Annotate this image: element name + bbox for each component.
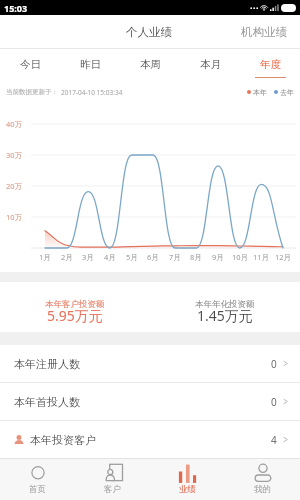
staticText: 5.95万元: [47, 306, 103, 325]
staticText: 本年首投人数: [14, 395, 80, 409]
button[interactable]: Performance: [150, 459, 225, 500]
staticText: 今日: [20, 58, 41, 71]
button[interactable]: 本周: [120, 49, 180, 82]
staticText: 本月: [200, 58, 221, 71]
staticText: 业绩: [179, 484, 196, 495]
staticText: 1.45万元: [197, 306, 253, 325]
staticText: 当前数据更新于：: [6, 88, 58, 96]
button[interactable]: 本月: [180, 49, 240, 82]
staticText: 4: [271, 433, 277, 447]
staticText: 1月: [39, 252, 51, 262]
staticText: 15:03: [4, 2, 28, 14]
staticText: 5月: [126, 252, 138, 262]
button[interactable]: 年度: [240, 49, 300, 82]
button[interactable]: 今日: [0, 49, 60, 82]
staticText: 我的: [254, 484, 271, 495]
staticText: 本年客户投资额: [45, 299, 105, 310]
staticText: 本年年化投资额: [195, 299, 255, 310]
button[interactable]: 本年投资客户: [0, 421, 300, 458]
staticText: 8月: [190, 252, 202, 262]
staticText: 9月: [212, 252, 224, 262]
button[interactable]: 本年首投人数: [0, 383, 300, 420]
staticText: 10月: [232, 252, 249, 262]
button[interactable]: Home: [0, 459, 75, 500]
staticText: 0: [271, 357, 277, 371]
staticText: 本年投资客户: [30, 433, 96, 447]
staticText: 本年注册人数: [14, 357, 80, 371]
button[interactable]: 昨日: [60, 49, 120, 82]
button[interactable]: 机构业绩: [225, 15, 300, 49]
staticText: 客户: [104, 484, 121, 495]
staticText: 30万: [6, 150, 23, 160]
button[interactable]: Customers: [75, 459, 150, 500]
button[interactable]: 本年注册人数: [0, 345, 300, 382]
staticText: 10万: [6, 212, 23, 222]
staticText: 2017-04-10 15:03:34: [61, 88, 123, 97]
staticText: 20万: [6, 181, 23, 191]
staticText: 机构业绩: [241, 25, 287, 39]
staticText: 年度: [260, 58, 281, 71]
button[interactable]: Mine: [225, 459, 300, 500]
staticText: 3月: [82, 252, 94, 262]
staticText: 6月: [147, 252, 159, 262]
button[interactable]: 本年年化投资额: [150, 282, 300, 332]
staticText: 40万: [6, 119, 23, 129]
staticText: 7月: [169, 252, 181, 262]
staticText: 本周: [140, 58, 161, 71]
staticText: 首页: [29, 484, 46, 495]
staticText: 4月: [104, 252, 116, 262]
staticText: 昨日: [80, 58, 101, 71]
staticText: 去年: [280, 88, 294, 97]
staticText: 2月: [61, 252, 73, 262]
button[interactable]: 本年客户投资额: [0, 282, 150, 332]
staticText: 本年: [253, 88, 267, 97]
button[interactable]: 个人业绩: [110, 15, 188, 49]
staticText: 11月: [253, 252, 270, 262]
staticText: 12月: [275, 252, 292, 262]
staticText: 个人业绩: [126, 25, 172, 39]
staticText: 0: [271, 395, 277, 409]
